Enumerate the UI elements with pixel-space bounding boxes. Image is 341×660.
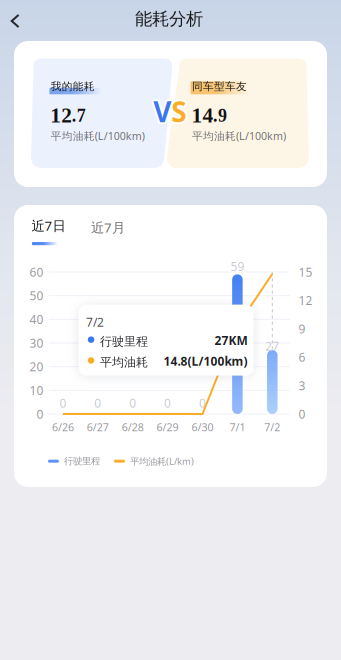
staticText: 0 bbox=[199, 395, 206, 411]
staticText: 27KM bbox=[215, 332, 248, 348]
staticText: V bbox=[153, 94, 171, 132]
staticText: V bbox=[155, 93, 173, 130]
staticText: 行驶里程 bbox=[64, 455, 100, 467]
staticText: 6/27 bbox=[87, 420, 109, 434]
staticText: 同车型车友 bbox=[192, 80, 247, 93]
staticText: 20 bbox=[29, 359, 43, 375]
staticText: 平均油耗 bbox=[100, 355, 148, 370]
staticText: 0 bbox=[298, 406, 305, 422]
staticText: 6/26 bbox=[52, 420, 74, 434]
staticText: 40 bbox=[29, 311, 43, 327]
staticText: 50 bbox=[29, 288, 43, 304]
staticText: V bbox=[152, 93, 170, 130]
staticText: 9 bbox=[298, 321, 305, 337]
staticText: S bbox=[173, 93, 188, 130]
staticText: S bbox=[173, 91, 188, 128]
staticText: 平均油耗(L/100km) bbox=[51, 129, 145, 143]
staticText: S bbox=[173, 94, 188, 132]
staticText: 0 bbox=[59, 395, 66, 411]
staticText: 3 bbox=[298, 378, 305, 393]
staticText: 6 bbox=[298, 349, 305, 365]
staticText: 12 bbox=[50, 104, 72, 127]
staticText: 6/29 bbox=[157, 420, 179, 434]
staticText: S bbox=[170, 91, 185, 128]
staticText: 0 bbox=[94, 395, 101, 411]
staticText: 0 bbox=[36, 406, 43, 422]
staticText: V bbox=[153, 93, 171, 130]
staticText: 7/1 bbox=[229, 420, 245, 434]
staticText: 7/2 bbox=[264, 420, 280, 434]
staticText: 27 bbox=[265, 338, 279, 354]
staticText: S bbox=[170, 94, 185, 132]
staticText: V bbox=[153, 93, 171, 130]
staticText: V bbox=[152, 94, 170, 132]
staticText: S bbox=[171, 93, 186, 130]
staticText: S bbox=[171, 91, 186, 128]
staticText: 30 bbox=[29, 335, 43, 351]
staticText: 14 bbox=[191, 104, 213, 127]
button[interactable]: 近7日 bbox=[31, 218, 69, 248]
button[interactable]: 返回 bbox=[0, 6, 30, 36]
staticText: V bbox=[152, 91, 170, 128]
staticText: 平均油耗(L/100km) bbox=[192, 129, 286, 143]
staticText: .9 bbox=[213, 106, 227, 125]
staticText: 7/2 bbox=[86, 314, 104, 330]
staticText: 10 bbox=[29, 382, 43, 398]
staticText: 行驶里程 bbox=[100, 334, 148, 349]
staticText: V bbox=[155, 94, 173, 132]
staticText: 6/28 bbox=[122, 420, 144, 434]
staticText: S bbox=[170, 93, 185, 130]
staticText: 12 bbox=[298, 292, 312, 308]
staticText: 近7月 bbox=[91, 218, 125, 236]
staticText: 0 bbox=[164, 395, 171, 411]
staticText: 能耗分析 bbox=[135, 8, 203, 30]
staticText: S bbox=[171, 94, 186, 132]
staticText: 我的能耗 bbox=[51, 80, 95, 93]
staticText: 59 bbox=[230, 258, 244, 274]
staticText: 60 bbox=[29, 264, 43, 280]
staticText: 近7日 bbox=[31, 217, 65, 234]
staticText: 14.8(L/100km) bbox=[164, 353, 248, 369]
staticText: 6/30 bbox=[191, 420, 213, 434]
staticText: 15 bbox=[298, 264, 312, 280]
staticText: S bbox=[171, 93, 186, 130]
staticText: V bbox=[155, 91, 173, 128]
staticText: 0 bbox=[129, 395, 136, 411]
staticText: 平均油耗(L/km) bbox=[130, 455, 194, 467]
staticText: V bbox=[153, 91, 171, 128]
button[interactable]: 近7月 bbox=[91, 218, 129, 248]
staticText: .7 bbox=[72, 106, 86, 125]
